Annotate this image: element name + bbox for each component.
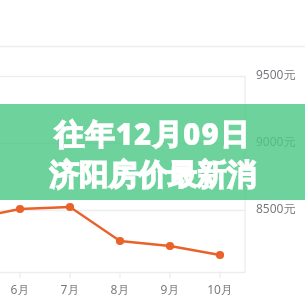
staticText: 9500元	[256, 66, 296, 82]
staticText: 9000元	[256, 133, 296, 149]
staticText: 7月	[50, 281, 90, 297]
staticText: 8月	[100, 281, 140, 297]
staticText: 济阳房价最新消	[0, 157, 305, 194]
staticText: 8500元	[256, 200, 296, 216]
staticText: 9月	[150, 281, 190, 297]
button[interactable]: 往年12月09日	[0, 104, 305, 200]
staticText: 6月	[0, 281, 40, 297]
staticText: 往年12月09日	[0, 113, 305, 153]
staticText: 10月	[200, 281, 240, 297]
